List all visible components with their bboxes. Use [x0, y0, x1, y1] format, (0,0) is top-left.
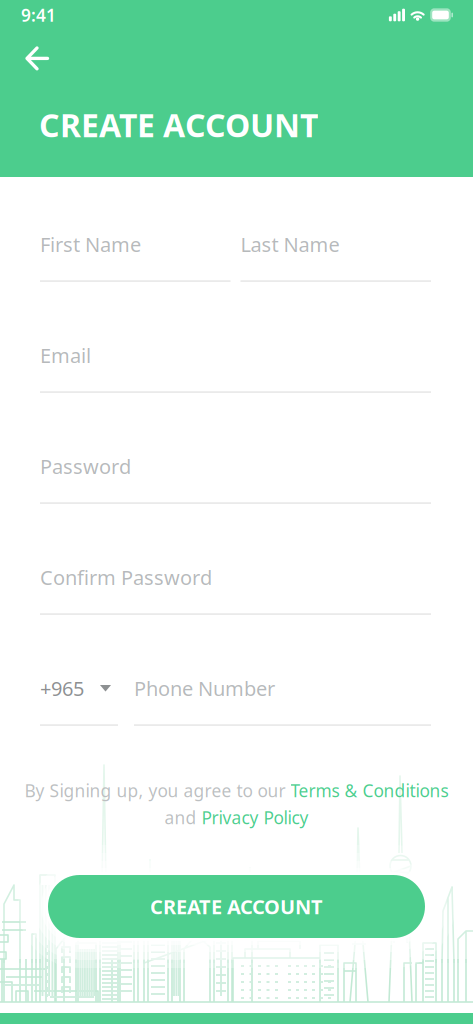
button[interactable]: Back — [0, 30, 61, 81]
staticText: and — [164, 806, 201, 829]
button[interactable]: Country code +965 — [40, 675, 118, 726]
staticText: +965 — [40, 675, 84, 702]
staticText: CREATE ACCOUNT — [39, 103, 318, 146]
button[interactable]: CREATE ACCOUNT — [48, 875, 425, 938]
staticText: Password — [40, 453, 131, 480]
staticText: 9:41 — [21, 3, 56, 26]
staticText: By Signing up, you agree to our — [24, 779, 290, 802]
staticText: Privacy Policy — [201, 806, 308, 829]
staticText: First Name — [40, 231, 141, 258]
button[interactable]: Privacy Policy — [201, 806, 308, 829]
staticText: Terms & Conditions — [290, 779, 448, 802]
button[interactable]: Terms & Conditions — [290, 779, 448, 802]
staticText: Phone Number — [134, 675, 275, 702]
staticText: Last Name — [240, 231, 339, 258]
staticText: Confirm Password — [40, 564, 212, 591]
staticText: Email — [40, 342, 91, 369]
staticText: CREATE ACCOUNT — [150, 893, 323, 920]
